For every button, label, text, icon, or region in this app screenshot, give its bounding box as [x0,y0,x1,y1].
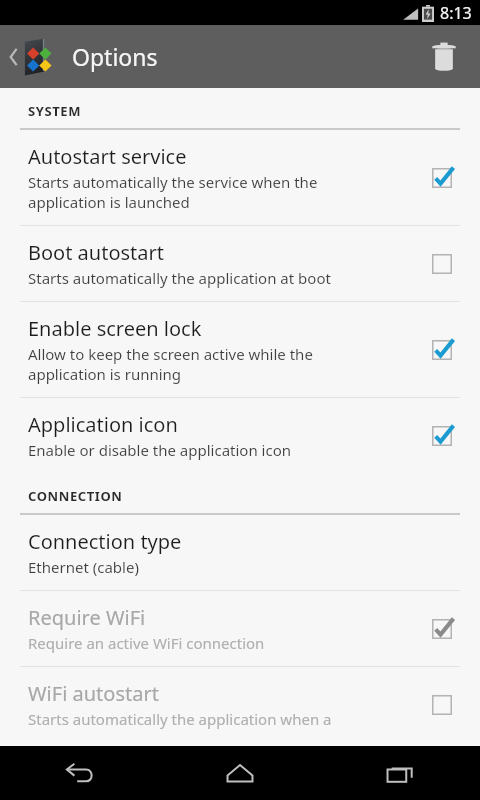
staticText: Enable or disable the application icon [28,440,292,460]
button[interactable]: WiFi autostart [0,667,480,742]
staticText: Connection type [28,528,182,555]
button[interactable]: Require WiFi [0,591,480,666]
staticText: Require WiFi [28,604,146,631]
button[interactable]: Boot autostart [0,226,480,301]
button[interactable]: Enable screen lock [0,302,480,397]
staticText: CONNECTION [28,487,123,505]
staticText: Options [72,41,158,72]
staticText: Starts automatically the service when th… [28,172,318,212]
staticText: Require an active WiFi connection [28,633,265,653]
staticText: Starts automatically the application at … [28,268,331,288]
button[interactable]: Back [45,749,115,797]
staticText: WiFi autostart [28,680,159,707]
button[interactable]: Boot autostart [422,244,462,284]
staticText: Ethernet (cable) [28,557,139,577]
staticText: SYSTEM [28,102,82,120]
button[interactable]: Autostart service [0,130,480,225]
button[interactable]: WiFi autostart [422,685,462,725]
button[interactable]: Application icon [422,416,462,456]
button[interactable]: Recent apps [365,749,435,797]
staticText: Application icon [28,411,178,438]
button[interactable]: Connection type [0,515,480,590]
button[interactable]: Enable screen lock [422,330,462,370]
button[interactable]: Delete [422,35,466,79]
staticText: Boot autostart [28,239,165,266]
staticText: 8:13 [440,2,472,24]
staticText: Allow to keep the screen active while th… [28,344,313,384]
button[interactable]: Navigate up [6,31,60,83]
button[interactable]: Autostart service [422,158,462,198]
button[interactable]: Application icon [0,398,480,473]
button[interactable]: Require WiFi [422,609,462,649]
staticText: Starts automatically the application whe… [28,709,332,729]
staticText: Enable screen lock [28,315,202,342]
button[interactable]: Home [205,749,275,797]
staticText: Autostart service [28,143,187,170]
